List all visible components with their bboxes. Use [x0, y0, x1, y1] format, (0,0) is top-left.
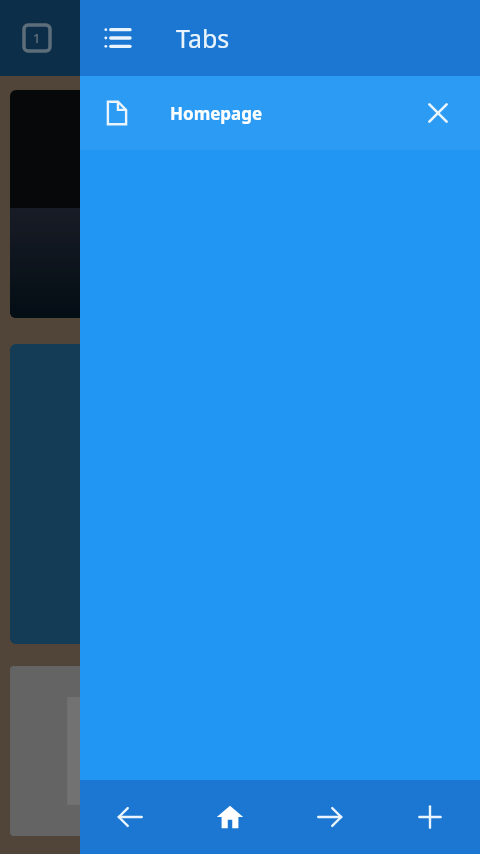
button[interactable] — [10, 666, 470, 836]
button[interactable]: Tabs count — [22, 23, 52, 53]
button[interactable]: Tab list — [80, 0, 480, 76]
button[interactable]: Forward — [280, 780, 380, 854]
button[interactable] — [10, 90, 470, 318]
staticText: Homepage — [170, 102, 263, 125]
button[interactable]: Back — [80, 780, 180, 854]
button[interactable]: New tab — [380, 780, 480, 854]
other: Tab list — [100, 21, 134, 55]
button[interactable]: Facebook — [10, 344, 470, 644]
button[interactable]: Homepage — [80, 76, 480, 150]
button[interactable]: Home — [180, 780, 280, 854]
staticText: Tabs — [176, 21, 230, 55]
button[interactable]: Close tab — [410, 85, 466, 141]
staticText: 1 — [33, 29, 41, 47]
